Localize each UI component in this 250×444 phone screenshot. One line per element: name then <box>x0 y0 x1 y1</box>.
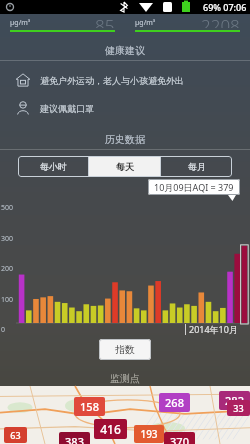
staticText: 2014年10月 <box>189 323 238 335</box>
staticText: 370 <box>170 434 189 444</box>
button[interactable]: 158 <box>0 386 250 444</box>
button[interactable]: 416 <box>94 419 127 439</box>
button[interactable]: 268 <box>159 393 190 412</box>
staticText: 268 <box>165 395 184 410</box>
staticText: 历史数据 <box>105 133 145 146</box>
staticText: 2208 <box>201 14 240 28</box>
button[interactable]: 避免户外运动，老人与小孩避免外出 <box>0 69 250 91</box>
staticText: 每月 <box>188 161 206 172</box>
button[interactable]: 193 <box>134 425 164 443</box>
button[interactable]: 370 <box>164 432 195 444</box>
staticText: 193 <box>140 427 158 441</box>
button[interactable]: 指数 <box>99 339 151 360</box>
staticText: 69% 07:06 <box>203 1 247 13</box>
button[interactable] <box>0 203 250 335</box>
staticText: 健康建议 <box>105 44 145 57</box>
button[interactable]: 每月 <box>161 156 232 177</box>
button[interactable]: 每小时 <box>18 156 88 177</box>
staticText: 158 <box>80 399 99 414</box>
staticText: 避免户外运动，老人与小孩避免外出 <box>40 75 184 86</box>
staticText: 416 <box>100 421 121 437</box>
button[interactable]: 每天 <box>89 156 160 177</box>
staticText: 监测点 <box>110 372 140 385</box>
staticText: 200 <box>1 264 14 274</box>
staticText: 500 <box>1 203 14 213</box>
button[interactable]: 建议佩戴口罩 <box>0 97 250 119</box>
staticText: 85 <box>95 14 115 28</box>
staticText: µg/m³ <box>135 18 156 28</box>
staticText: 282 <box>225 393 244 408</box>
staticText: 300 <box>1 234 14 244</box>
button[interactable]: 383 <box>59 432 90 444</box>
staticText: 每小时 <box>40 161 67 172</box>
staticText: 383 <box>65 434 84 444</box>
staticText: 建议佩戴口罩 <box>40 103 94 114</box>
staticText: 每天 <box>116 161 134 172</box>
button[interactable]: 33 <box>227 400 250 416</box>
button[interactable]: 63 <box>4 427 27 443</box>
button[interactable]: 282 <box>219 391 250 410</box>
button[interactable]: 158 <box>74 397 105 416</box>
staticText: 指数 <box>115 343 135 356</box>
staticText: 0 <box>1 325 6 335</box>
staticText: µg/m³ <box>10 18 31 28</box>
staticText: 10月09日AQI = 379 <box>154 181 234 193</box>
staticText: 100 <box>1 295 14 305</box>
staticText: 33 <box>233 402 244 414</box>
staticText: 63 <box>10 429 21 441</box>
